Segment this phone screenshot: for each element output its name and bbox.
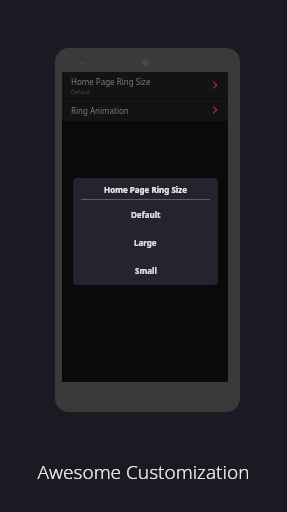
staticText: 11:45 PM <box>66 75 88 82</box>
staticText: Home Page Ring Size <box>73 184 218 195</box>
staticText: Default <box>71 88 90 95</box>
staticText: Awesome Customization <box>0 459 287 485</box>
button[interactable]: Home Page Ring Size <box>62 72 228 98</box>
staticText: Default <box>131 209 161 220</box>
button[interactable]: Default <box>73 200 218 228</box>
staticText: Large <box>134 237 157 248</box>
staticText: Home Page Ring Size <box>71 76 151 87</box>
staticText: Launcher Preferences <box>90 80 183 92</box>
staticText: Small <box>135 265 157 276</box>
staticText: Ring Animation <box>71 105 129 116</box>
button[interactable]: Small <box>73 256 218 284</box>
button[interactable]: Ring Animation <box>62 99 228 121</box>
button[interactable]: Back <box>68 78 84 94</box>
button[interactable]: Large <box>73 228 218 256</box>
